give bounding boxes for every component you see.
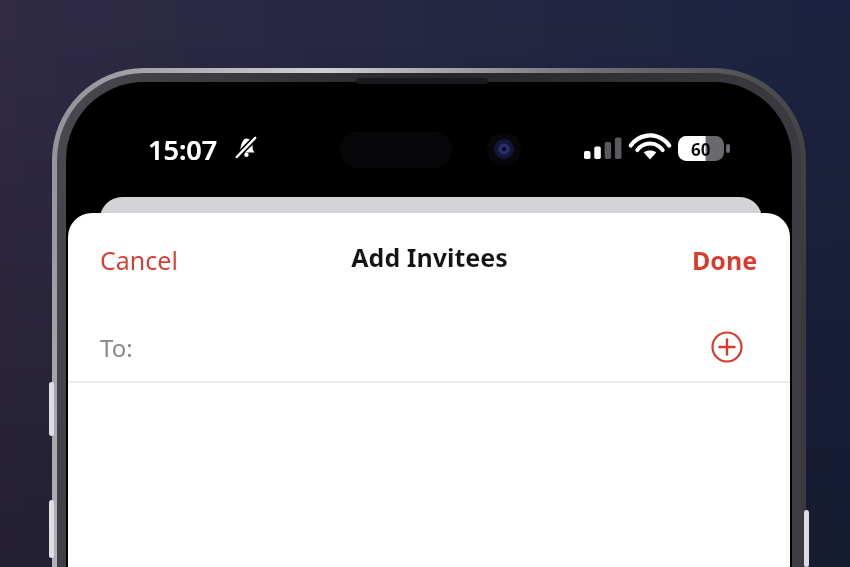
- staticText: To:: [100, 331, 133, 364]
- button[interactable]: Cancel: [86, 233, 192, 287]
- staticText: Done: [692, 243, 758, 277]
- staticText: Add Invitees: [351, 240, 508, 274]
- staticText: Cancel: [100, 243, 178, 277]
- staticText: 60: [691, 138, 711, 161]
- staticText: 15:07: [148, 131, 218, 168]
- button[interactable]: Done: [678, 233, 772, 287]
- button[interactable]: To:: [68, 313, 790, 381]
- button[interactable]: Add invitee: [707, 327, 747, 367]
